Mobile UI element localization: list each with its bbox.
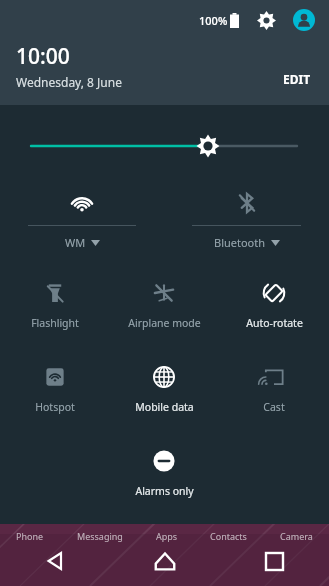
staticText: Camera (280, 530, 313, 542)
button[interactable]: Recents (250, 537, 298, 585)
staticText: 100% (199, 13, 228, 28)
button[interactable]: Cast (219, 349, 329, 433)
staticText: Hotspot (35, 400, 75, 414)
staticText: 10:00 (16, 42, 70, 71)
staticText: EDIT (283, 71, 311, 87)
button[interactable]: Mobile data (109, 349, 219, 433)
button[interactable]: User profile (291, 7, 317, 33)
button[interactable]: Airplane mode (109, 265, 219, 349)
button[interactable]: Brightness (0, 105, 329, 181)
staticText: Airplane mode (128, 316, 201, 330)
staticText: Flashlight (31, 316, 79, 330)
button[interactable]: Flashlight (0, 265, 109, 349)
button[interactable]: WM (0, 181, 164, 265)
staticText: Alarms only (135, 484, 194, 498)
staticText: Messaging (77, 530, 123, 542)
staticText: Wednesday, 8 June (16, 74, 122, 90)
button[interactable]: Alarms only (109, 433, 219, 517)
button[interactable]: Home (141, 537, 189, 585)
staticText: Apps (156, 530, 178, 542)
button[interactable]: Auto-rotate (219, 265, 329, 349)
staticText: Contacts (210, 530, 247, 542)
staticText: Cast (263, 400, 285, 414)
button[interactable]: Back (31, 537, 79, 585)
staticText: Auto-rotate (246, 316, 303, 330)
button[interactable]: Settings (253, 7, 279, 33)
staticText: WM (65, 235, 86, 250)
staticText: Phone (16, 530, 44, 542)
staticText: Bluetooth (214, 235, 266, 250)
staticText: Mobile data (135, 400, 194, 414)
button[interactable]: EDIT (279, 67, 315, 91)
button[interactable]: Bluetooth (164, 181, 329, 265)
button[interactable]: Hotspot (0, 349, 109, 433)
